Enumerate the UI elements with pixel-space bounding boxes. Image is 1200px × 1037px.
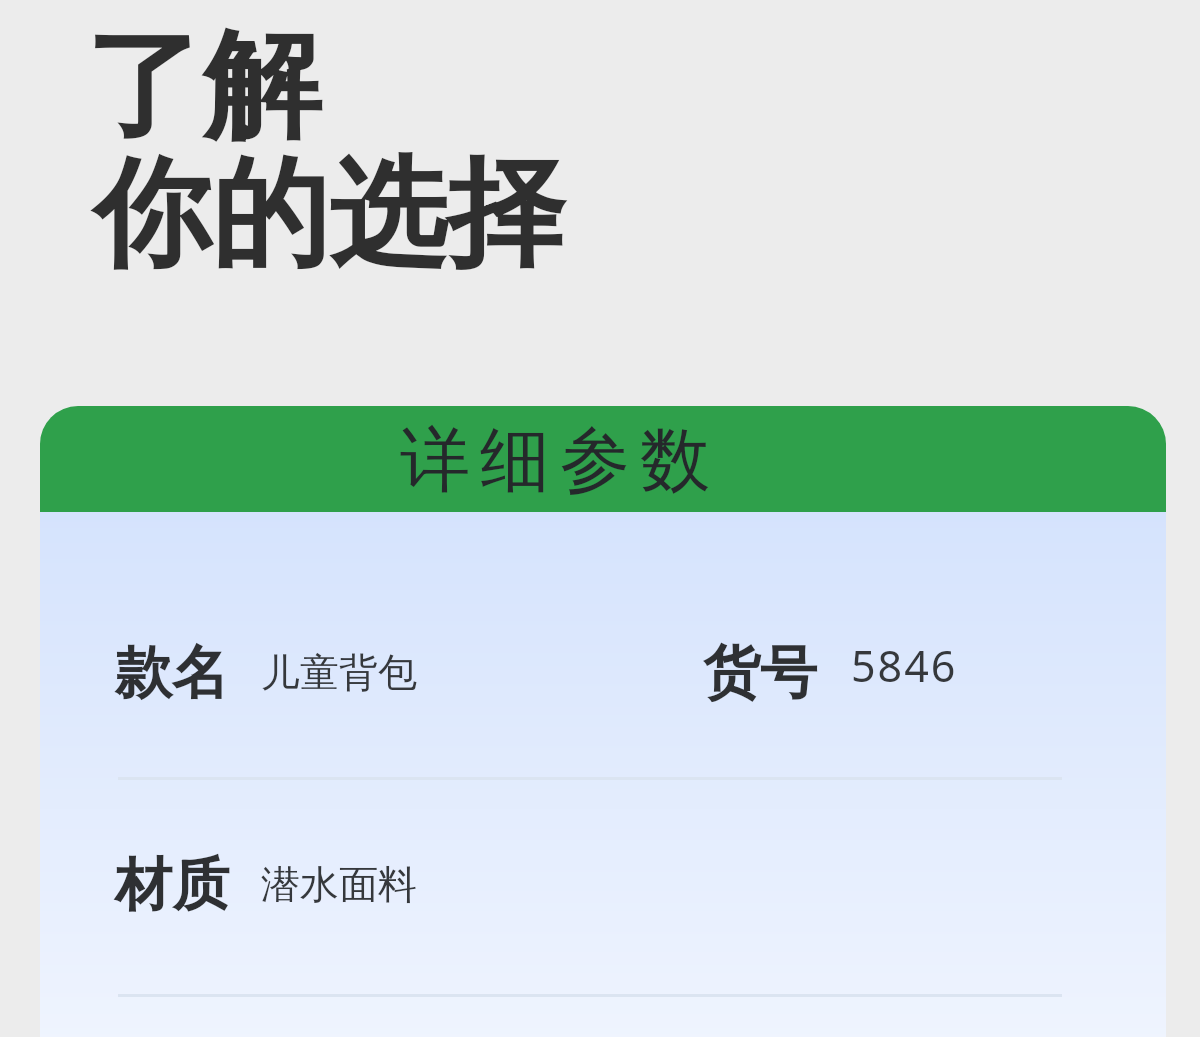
button[interactable]: 款名 (40, 565, 1166, 780)
staticText: 详细参数 (395, 417, 715, 505)
staticText: 儿童背包 (261, 648, 417, 697)
staticText: 潜水面料 (261, 860, 417, 909)
staticText: 货号 (703, 637, 817, 709)
staticText: 5846 (851, 636, 958, 695)
staticText: 材质 (115, 849, 229, 921)
staticText: 款名 (115, 637, 229, 709)
button[interactable]: 材质 (40, 780, 1166, 997)
button[interactable]: 详细参数 (40, 406, 1166, 512)
staticText: 了解 (85, 12, 321, 161)
staticText: 你的选择 (93, 140, 565, 289)
